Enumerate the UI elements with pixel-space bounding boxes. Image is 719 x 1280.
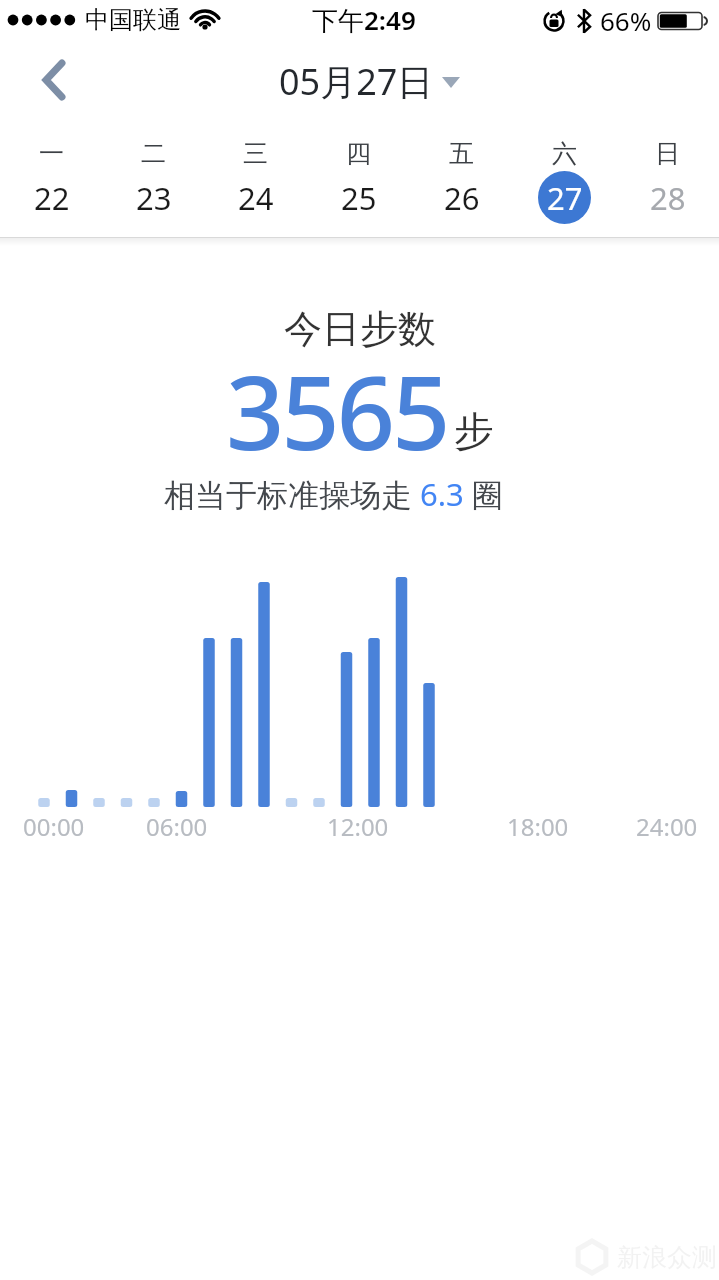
button[interactable]: 六 xyxy=(513,128,616,224)
staticText: 今日步数 xyxy=(284,305,436,353)
button[interactable]: 四 xyxy=(307,128,410,224)
staticText: 28 xyxy=(650,177,686,219)
staticText: 一 xyxy=(39,138,64,169)
button[interactable]: 日 xyxy=(616,128,719,224)
staticText: 18:00 xyxy=(507,810,569,843)
staticText: 日 xyxy=(655,138,680,169)
staticText: 相当于标准操场走 6.3 圈 xyxy=(164,473,503,515)
button[interactable]: 一 xyxy=(0,128,102,224)
staticText: 四 xyxy=(346,138,371,169)
staticText: 3565 xyxy=(226,341,448,480)
button[interactable]: 05月27日 xyxy=(279,57,460,106)
staticText: 步 xyxy=(454,406,494,456)
button[interactable]: 三 xyxy=(204,128,307,224)
staticText: 三 xyxy=(243,138,268,169)
staticText: 六 xyxy=(552,138,577,169)
staticText: 66% xyxy=(600,3,652,38)
staticText: 二 xyxy=(141,138,166,169)
staticText: 24 xyxy=(238,177,274,219)
staticText: 00:00 xyxy=(23,810,85,843)
staticText: 下午2:49 xyxy=(312,2,416,38)
staticText: 23 xyxy=(136,177,172,219)
button[interactable] xyxy=(28,54,80,106)
staticText: 五 xyxy=(449,138,474,169)
staticText: 05月27日 xyxy=(279,57,434,106)
staticText: 06:00 xyxy=(146,810,208,843)
staticText: 26 xyxy=(444,177,480,219)
staticText: 12:00 xyxy=(327,810,389,843)
staticText: 22 xyxy=(34,177,70,219)
staticText: 25 xyxy=(341,177,377,219)
button[interactable]: 二 xyxy=(102,128,204,224)
staticText: 新浪众测 xyxy=(617,1242,717,1273)
button[interactable]: 五 xyxy=(410,128,513,224)
staticText: 中国联通 xyxy=(85,5,181,35)
staticText: 24:00 xyxy=(636,810,698,843)
staticText: 27 xyxy=(547,177,583,219)
